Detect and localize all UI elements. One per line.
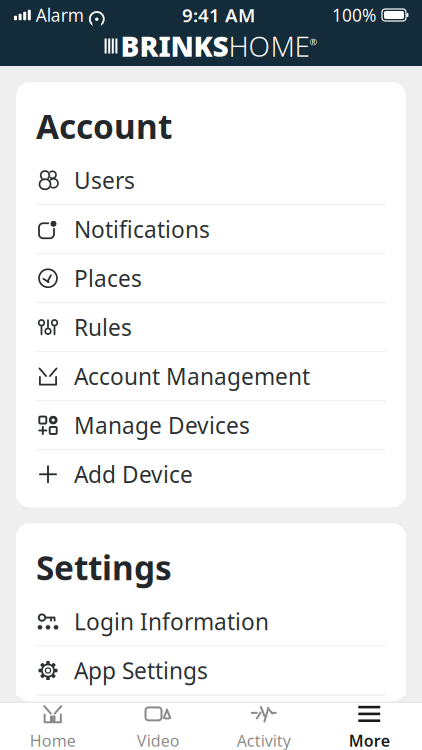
staticText: BRINKS bbox=[120, 27, 228, 65]
staticText: Account bbox=[36, 104, 172, 148]
button[interactable]: Notifications bbox=[16, 205, 406, 254]
staticText: Users bbox=[74, 165, 135, 195]
staticText: More bbox=[349, 730, 390, 750]
staticText: Rules bbox=[74, 312, 132, 342]
button[interactable]: App Settings bbox=[16, 646, 406, 695]
button[interactable]: Activity bbox=[211, 696, 316, 750]
button[interactable]: Video bbox=[105, 696, 211, 750]
button[interactable]: Home bbox=[0, 696, 105, 750]
button[interactable]: Manage Devices bbox=[16, 401, 406, 450]
staticText: Video bbox=[137, 730, 180, 750]
staticText: 9:41 AM bbox=[182, 3, 255, 27]
staticText: Alarm bbox=[36, 3, 84, 26]
staticText: Places bbox=[74, 263, 142, 293]
staticText: Login Information bbox=[74, 606, 269, 637]
button[interactable]: More bbox=[316, 696, 422, 750]
button[interactable]: Add Device bbox=[16, 450, 406, 499]
staticText: ® bbox=[309, 36, 317, 48]
staticText: About bbox=[36, 739, 137, 750]
staticText: Settings bbox=[36, 545, 172, 590]
button[interactable]: Rules bbox=[16, 303, 406, 352]
staticText: App Settings bbox=[74, 655, 208, 686]
staticText: Activity bbox=[237, 730, 291, 750]
staticText: Home bbox=[30, 730, 76, 750]
staticText: Account Management bbox=[74, 361, 310, 391]
staticText: 100% bbox=[332, 3, 376, 26]
button[interactable]: Places bbox=[16, 254, 406, 303]
button[interactable]: Users bbox=[16, 156, 406, 205]
button[interactable]: Login Information bbox=[16, 597, 406, 646]
staticText: Manage Devices bbox=[74, 410, 250, 440]
staticText: Add Device bbox=[74, 459, 193, 489]
staticText: Notifications bbox=[74, 214, 210, 244]
staticText: HOME bbox=[228, 27, 309, 65]
button[interactable]: Account Management bbox=[16, 352, 406, 401]
